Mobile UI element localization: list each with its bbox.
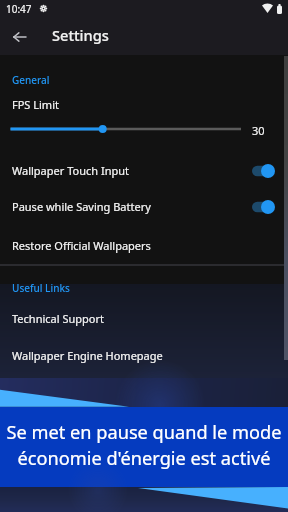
button[interactable]: FPS Limit — [0, 90, 288, 142]
button[interactable]: Restore Official Wallpapers — [0, 227, 288, 264]
staticText: Wallpaper Touch Input — [12, 163, 129, 178]
staticText: Pause while Saving Battery — [12, 199, 151, 214]
button[interactable]: Wallpaper Engine Homepage — [0, 337, 288, 374]
staticText: Settings — [52, 25, 109, 45]
staticText: 10:47 — [6, 2, 32, 16]
button[interactable]: Back — [0, 17, 36, 53]
staticText: Technical Support — [12, 311, 104, 326]
staticText: FPS Limit — [12, 97, 59, 112]
staticText: Wallpaper Engine Homepage — [12, 348, 163, 363]
staticText: General — [12, 73, 50, 87]
staticText: Useful Links — [12, 281, 70, 295]
staticText: Se met en pause quand le mode économie d… — [3, 420, 285, 470]
staticText: Restore Official Wallpapers — [12, 238, 151, 253]
staticText: 30 — [252, 123, 265, 138]
button[interactable]: Wallpaper Touch Input — [0, 152, 288, 189]
button[interactable]: Technical Support — [0, 300, 288, 337]
button[interactable]: Pause while Saving Battery — [0, 188, 288, 225]
